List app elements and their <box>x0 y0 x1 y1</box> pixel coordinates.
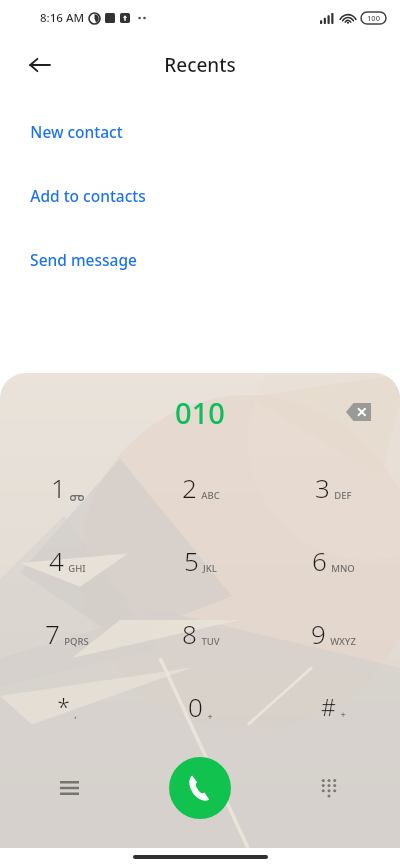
staticText: MNO <box>331 562 355 575</box>
staticText: 2 <box>182 470 197 505</box>
button[interactable]: 5 <box>134 524 267 597</box>
staticText: 4 <box>49 543 64 578</box>
button[interactable]: Backspace <box>338 392 378 432</box>
button[interactable]: 3 <box>267 451 400 524</box>
button[interactable]: 8 <box>134 597 267 670</box>
button[interactable]: # <box>267 670 400 743</box>
staticText: # <box>321 691 336 722</box>
button[interactable]: 6 <box>267 524 400 597</box>
button[interactable]: Back <box>18 43 62 87</box>
button[interactable]: Add to contacts <box>0 184 400 206</box>
button[interactable]: Call <box>169 757 231 819</box>
staticText: GHI <box>68 562 86 575</box>
button[interactable]: 2 <box>134 451 267 524</box>
button[interactable]: 4 <box>0 524 134 597</box>
staticText: 010 <box>175 393 225 432</box>
staticText: 100 <box>367 13 380 23</box>
staticText: 1 <box>51 470 66 505</box>
staticText: * <box>57 691 70 722</box>
staticText: , <box>74 708 77 720</box>
staticText: Add to contacts <box>30 185 146 206</box>
staticText: 6 <box>312 543 327 578</box>
staticText: 7 <box>45 616 60 651</box>
staticText: + <box>207 710 213 722</box>
button[interactable]: Keypad <box>306 765 352 811</box>
staticText: + <box>340 708 346 720</box>
staticText: 8 <box>182 616 197 651</box>
staticText: ABC <box>201 489 220 502</box>
staticText: Send message <box>30 249 137 270</box>
staticText: 3 <box>315 470 330 505</box>
button[interactable]: 0 <box>134 670 267 743</box>
staticText: TUV <box>201 635 220 648</box>
staticText: PQRS <box>64 635 89 648</box>
staticText: New contact <box>30 121 123 142</box>
button[interactable]: 9 <box>267 597 400 670</box>
staticText: DEF <box>334 489 352 502</box>
staticText: 9 <box>311 616 326 651</box>
button[interactable]: 7 <box>0 597 134 670</box>
button[interactable]: * <box>0 670 134 743</box>
button[interactable]: 1 <box>0 451 134 524</box>
staticText: Recents <box>164 52 236 78</box>
staticText: JKL <box>203 562 217 575</box>
staticText: 5 <box>184 543 199 578</box>
staticText: 8:16 AM <box>40 10 84 26</box>
staticText: 0 <box>188 689 203 724</box>
staticText: WXYZ <box>330 635 356 648</box>
button[interactable]: Send message <box>0 248 400 270</box>
button[interactable]: More options <box>46 765 92 811</box>
button[interactable]: New contact <box>0 120 400 142</box>
